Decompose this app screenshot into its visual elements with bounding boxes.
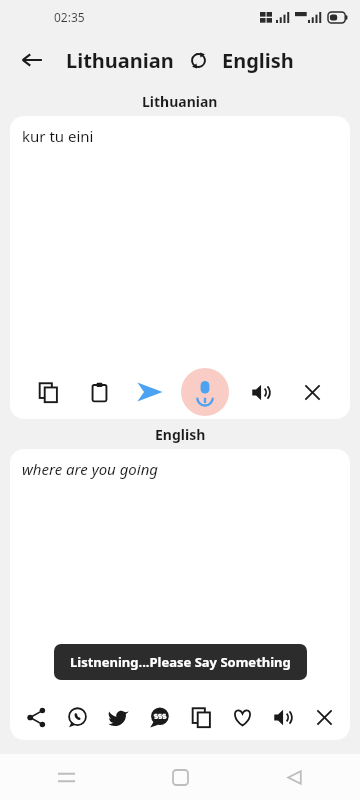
- button[interactable]: Share: [17, 698, 55, 736]
- button[interactable]: Close: [305, 698, 343, 736]
- button[interactable]: Microphone: [181, 368, 229, 416]
- staticText: Listnening...Please Say Something: [70, 653, 291, 671]
- button[interactable]: Speak: [242, 373, 280, 411]
- staticText: 02:35: [54, 9, 85, 25]
- button[interactable]: Copy: [182, 698, 220, 736]
- button[interactable]: WhatsApp: [58, 698, 96, 736]
- staticText: Lithuanian: [142, 92, 218, 111]
- button[interactable]: Lithuanian: [66, 47, 174, 74]
- button[interactable]: SMS: [140, 698, 178, 736]
- button[interactable]: Home: [160, 757, 200, 797]
- button[interactable]: Twitter: [99, 698, 137, 736]
- button[interactable]: Translate: [131, 373, 169, 411]
- button[interactable]: Back: [12, 40, 52, 80]
- staticText: where are you going: [22, 459, 159, 479]
- button[interactable]: Copy: [29, 373, 67, 411]
- button[interactable]: Speak: [264, 698, 302, 736]
- staticText: English: [222, 47, 294, 74]
- button[interactable]: Paste: [80, 373, 118, 411]
- button[interactable]: English: [222, 47, 294, 74]
- staticText: kur tu eini: [22, 126, 94, 146]
- button[interactable]: Back: [274, 757, 314, 797]
- button[interactable]: Clear: [293, 373, 331, 411]
- staticText: Lithuanian: [66, 47, 174, 74]
- button[interactable]: Swap languages: [184, 46, 212, 74]
- button[interactable]: Favorite: [223, 698, 261, 736]
- button[interactable]: Recent apps: [46, 757, 86, 797]
- staticText: English: [155, 425, 206, 444]
